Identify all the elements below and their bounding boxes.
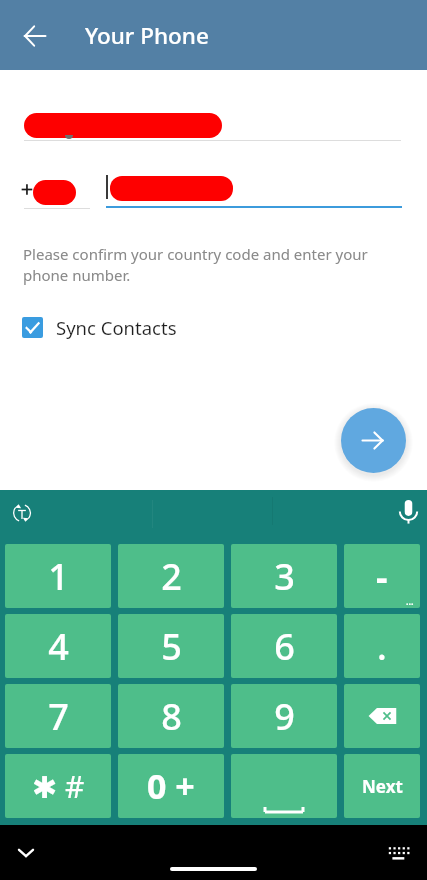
staticText: Sync Contacts <box>56 315 177 340</box>
staticText: 3 <box>274 552 295 601</box>
button[interactable]: 0 + <box>118 754 224 818</box>
staticText: 1 <box>48 552 69 601</box>
button[interactable]: 9 <box>231 684 337 748</box>
button[interactable] <box>344 684 420 748</box>
button[interactable]: 4 <box>5 614 111 678</box>
button[interactable]: 7 <box>5 684 111 748</box>
button[interactable]: Sync Contacts <box>22 315 177 340</box>
button[interactable]: Back <box>18 18 52 52</box>
button[interactable]: 5 <box>118 614 224 678</box>
staticText: Your Phone <box>85 20 209 51</box>
button[interactable]: Voice input <box>394 495 423 524</box>
staticText: 7 <box>48 692 69 741</box>
button[interactable]: - <box>344 544 420 608</box>
button[interactable]: Next <box>341 408 406 473</box>
staticText: Please confirm your country code and ent… <box>23 244 368 286</box>
button[interactable]: Change keyboard <box>384 837 414 867</box>
staticText: 5 <box>161 622 182 671</box>
button[interactable]: 1 <box>5 544 111 608</box>
staticText: ... <box>406 595 414 607</box>
button[interactable]: 2 <box>118 544 224 608</box>
button[interactable]: Country code <box>18 172 90 209</box>
staticText: ✱ # <box>32 766 85 807</box>
staticText: . <box>377 622 387 671</box>
staticText: 8 <box>161 692 182 741</box>
button[interactable]: Name <box>24 105 401 141</box>
button[interactable]: ✱ # <box>5 754 111 818</box>
button[interactable]: Switch input method <box>8 499 36 527</box>
button[interactable] <box>231 754 337 818</box>
button[interactable]: 6 <box>231 614 337 678</box>
button[interactable]: Hide keyboard <box>11 838 41 868</box>
staticText: 2 <box>161 552 182 601</box>
button[interactable]: Phone number <box>106 168 402 208</box>
button[interactable]: Next <box>344 754 420 818</box>
button[interactable]: . <box>344 614 420 678</box>
staticText: 6 <box>274 622 295 671</box>
staticText: Next <box>362 775 403 798</box>
staticText: - <box>376 552 388 601</box>
button[interactable]: 8 <box>118 684 224 748</box>
staticText: 9 <box>274 692 295 741</box>
staticText: 0 + <box>147 763 195 809</box>
button[interactable]: 3 <box>231 544 337 608</box>
staticText: 4 <box>48 622 69 671</box>
